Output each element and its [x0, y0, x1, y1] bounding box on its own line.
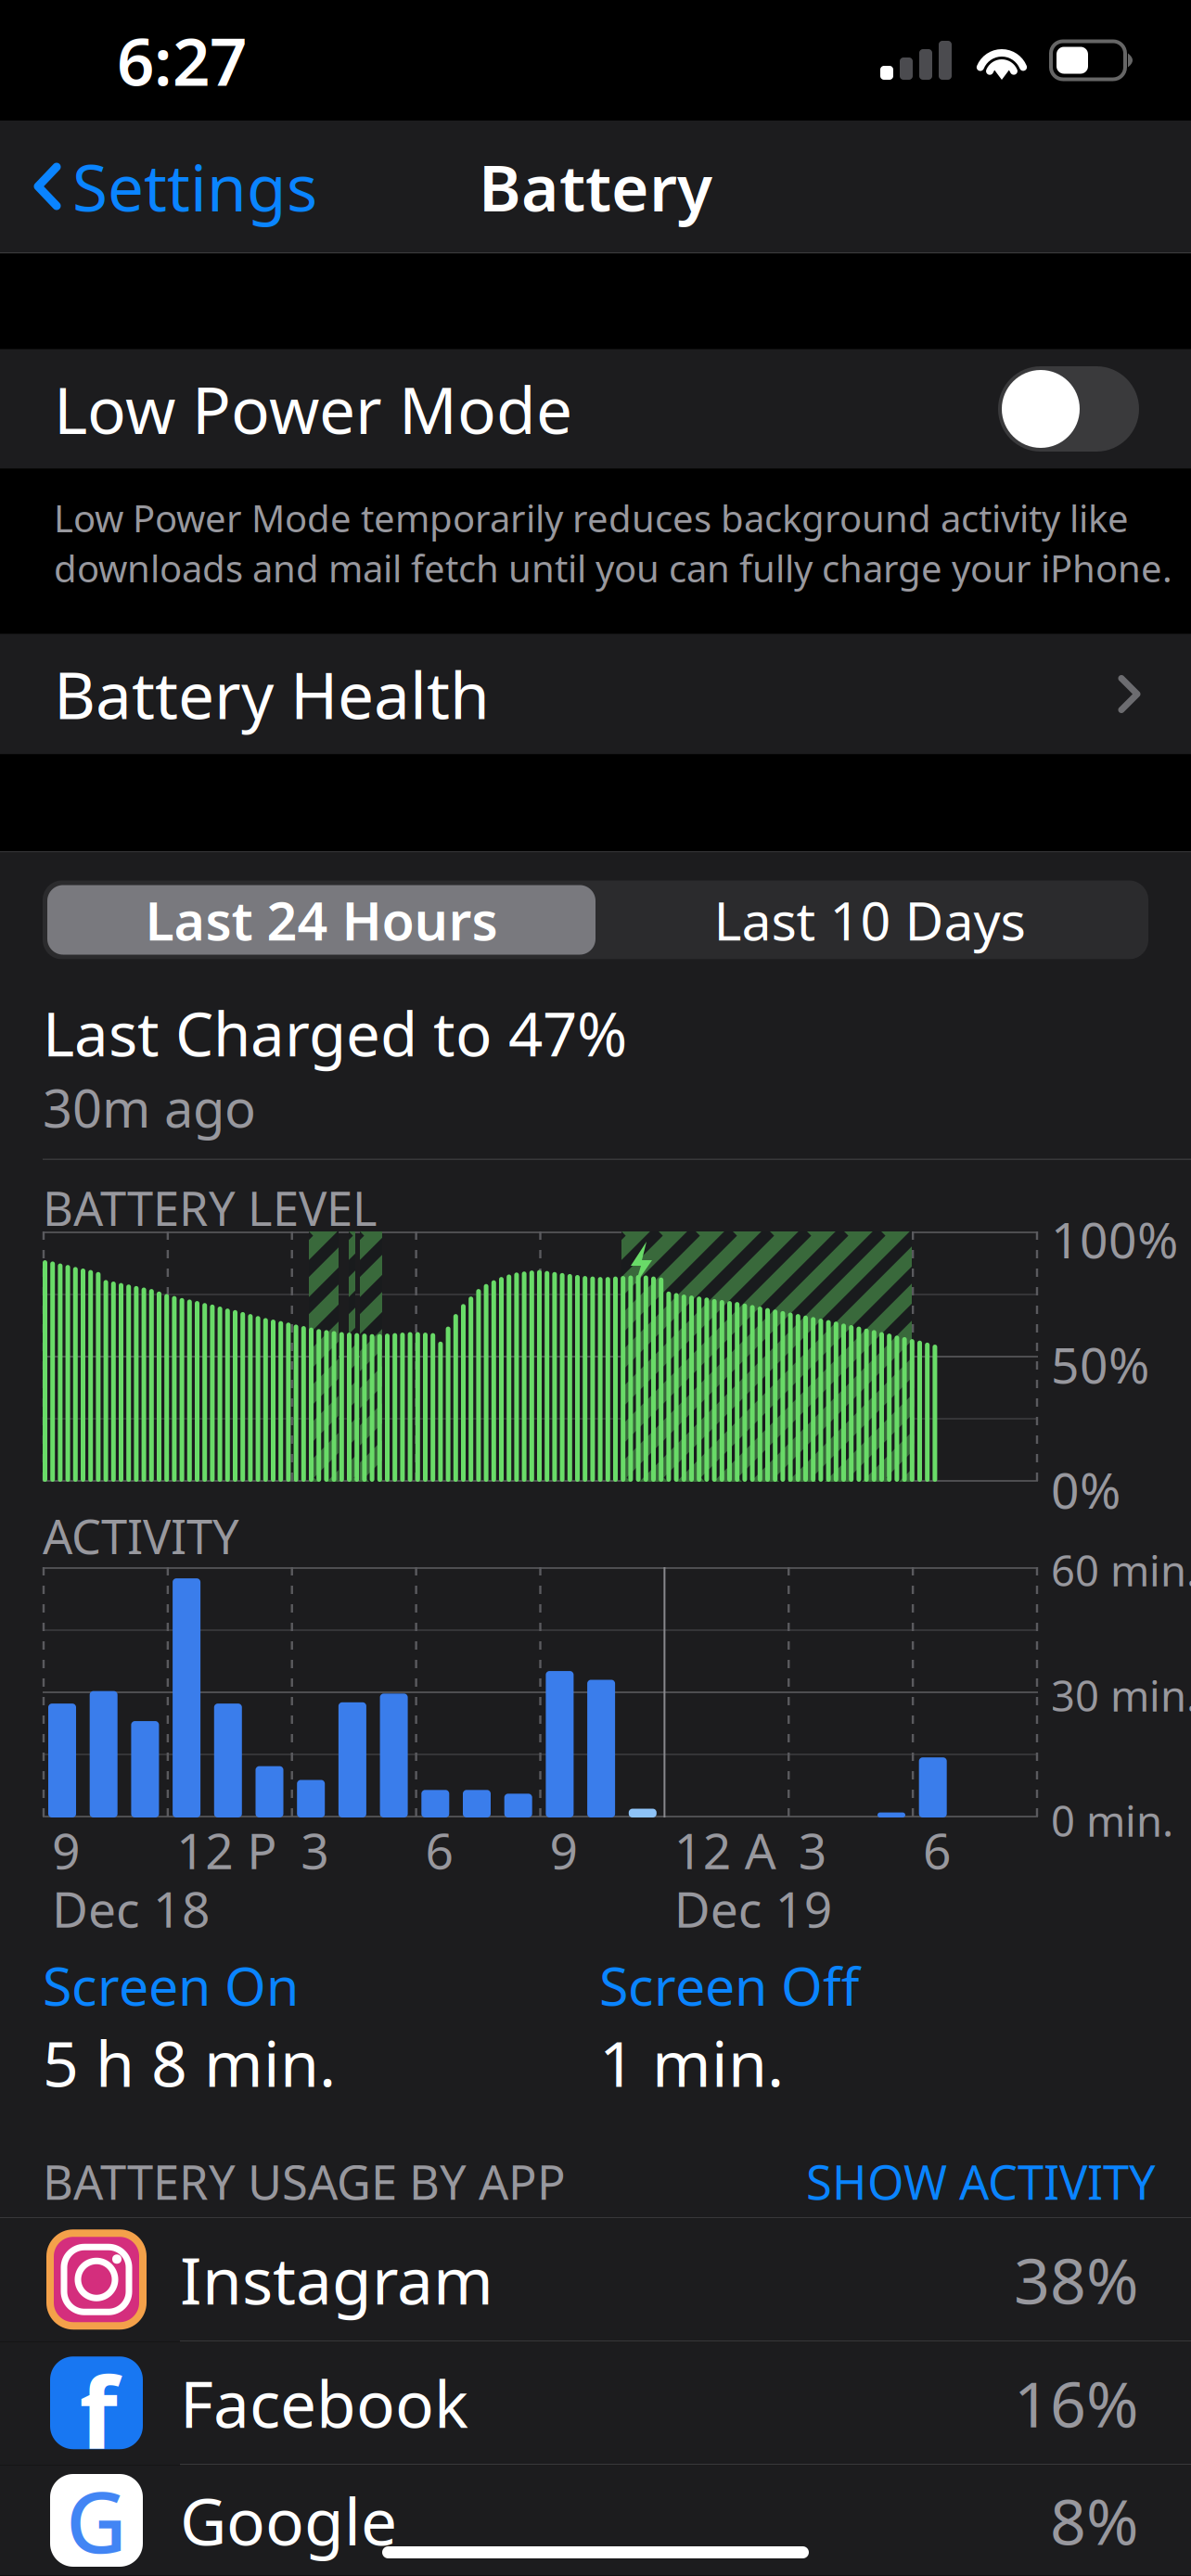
staticText: 100% — [1051, 1206, 1178, 1272]
staticText: 9 — [550, 1817, 578, 1883]
staticText: Screen On — [43, 1950, 299, 2020]
button[interactable]: Settings — [0, 134, 339, 238]
button[interactable]: Last 10 Days — [595, 885, 1144, 955]
staticText: 60 min. — [1051, 1542, 1191, 1598]
staticText: G — [66, 2465, 127, 2576]
button[interactable]: Battery Health — [0, 634, 1191, 754]
staticText: 0 min. — [1051, 1792, 1173, 1848]
staticText: 38% — [1014, 2238, 1139, 2321]
staticText: 16% — [1014, 2361, 1139, 2445]
staticText: downloads and mail fetch until you can f… — [54, 543, 1172, 593]
staticText: Battery — [479, 144, 712, 229]
staticText: 6:27 — [117, 17, 247, 104]
staticText: Battery Health — [54, 651, 490, 737]
staticText: Instagram — [180, 2237, 493, 2322]
staticText: 6 — [425, 1817, 454, 1883]
staticText: Settings — [72, 144, 317, 229]
button[interactable]: G — [0, 2465, 1191, 2576]
staticText: 12 P — [176, 1817, 277, 1883]
staticText: 8% — [1050, 2478, 1139, 2562]
staticText: 3 — [798, 1817, 827, 1883]
staticText: 6 — [923, 1817, 952, 1883]
staticText: 30m ago — [43, 1073, 256, 1142]
staticText: Last 10 Days — [714, 885, 1025, 955]
staticText: 0% — [1051, 1457, 1121, 1522]
staticText: 30 min. — [1051, 1667, 1191, 1723]
staticText: 5 h 8 min. — [43, 2020, 336, 2104]
staticText: SHOW ACTIVITY — [806, 2150, 1156, 2213]
staticText: Low Power Mode — [54, 366, 572, 452]
staticText: Low Power Mode temporarily reduces backg… — [54, 493, 1129, 542]
staticText: BATTERY USAGE BY APP — [43, 2150, 566, 2213]
button[interactable]: Low Power Mode — [998, 366, 1139, 452]
button[interactable]: Last 24 Hours — [47, 885, 595, 955]
staticText: Facebook — [180, 2360, 468, 2446]
staticText: Last 24 Hours — [145, 885, 498, 955]
staticText: Google — [180, 2478, 397, 2563]
button[interactable]: f — [0, 2342, 1191, 2464]
staticText: 12 A — [674, 1817, 776, 1883]
staticText: 3 — [301, 1817, 329, 1883]
staticText: ACTIVITY — [43, 1505, 239, 1567]
staticText: Screen Off — [599, 1950, 859, 2020]
staticText: 1 min. — [599, 2020, 784, 2104]
button[interactable]: Instagram — [0, 2219, 1191, 2340]
staticText: 9 — [52, 1817, 81, 1883]
staticText: 50% — [1051, 1332, 1149, 1397]
staticText: Dec 19 — [674, 1876, 833, 1941]
staticText: f — [79, 2345, 117, 2476]
staticText: Dec 18 — [52, 1876, 211, 1941]
button[interactable]: SHOW ACTIVITY — [806, 2150, 1156, 2213]
staticText: BATTERY LEVEL — [43, 1177, 378, 1231]
staticText: Last Charged to 47% — [43, 993, 627, 1073]
